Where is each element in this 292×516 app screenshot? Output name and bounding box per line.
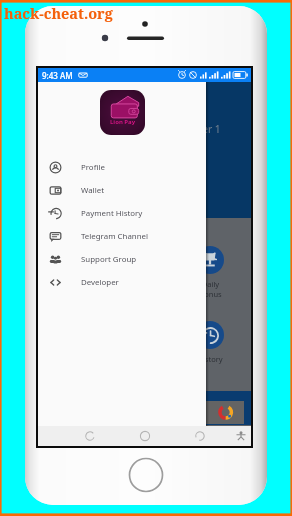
button[interactable]: Recents: [190, 426, 210, 446]
staticText: Profile: [81, 162, 105, 173]
button[interactable]: Telegram Channel: [38, 225, 206, 248]
staticText: Support Group: [81, 254, 137, 265]
button[interactable]: History: [180, 321, 240, 364]
staticText: Daily Bonus: [69, 279, 92, 299]
staticText: Daily Bonus: [199, 279, 222, 299]
button[interactable]: Daily Bonus: [50, 246, 110, 299]
staticText: 9:43 AM: [42, 70, 73, 81]
button[interactable]: Daily Bonus: [115, 246, 175, 299]
staticText: Developer: [81, 277, 119, 288]
staticText: Payment History: [81, 208, 143, 219]
staticText: hack-cheat.org: [4, 3, 113, 23]
button[interactable]: Payment History: [38, 202, 206, 225]
button[interactable]: Home: [135, 426, 155, 446]
button[interactable]: Developer: [38, 271, 206, 294]
button[interactable]: Accessibility: [231, 426, 251, 446]
button[interactable]: Profile: [38, 156, 206, 179]
button[interactable]: Lion Pay logo: [100, 90, 145, 135]
staticText: Wallet: [81, 185, 104, 196]
staticText: Lion Pay: [110, 118, 136, 126]
staticText: Telegram Channel: [81, 231, 149, 242]
button[interactable]: Wallet: [38, 179, 206, 202]
staticText: History: [197, 354, 223, 364]
button[interactable]: Support Group: [38, 248, 206, 271]
button[interactable]: Daily Bonus: [180, 246, 240, 299]
staticText: User 1: [190, 122, 221, 136]
button[interactable]: Back: [80, 426, 100, 446]
